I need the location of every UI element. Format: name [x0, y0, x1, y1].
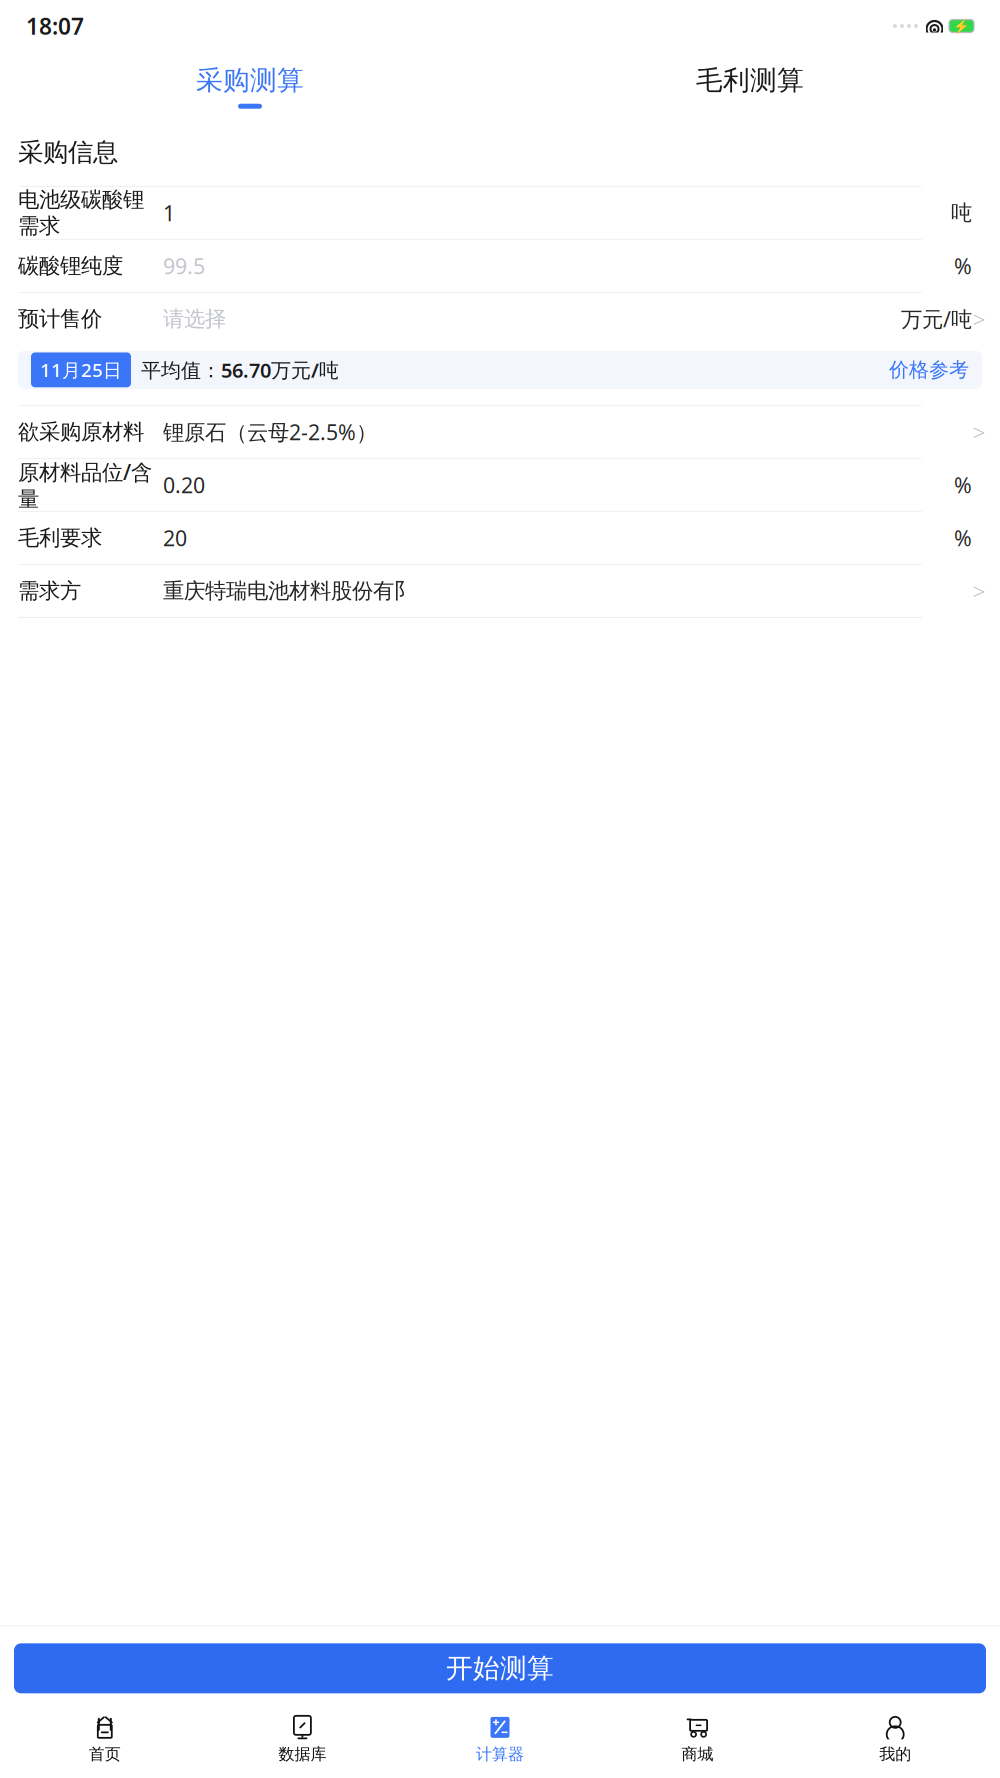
staticText: ⚡ [953, 18, 970, 34]
staticText: 我的 [879, 1744, 911, 1764]
staticText: % [954, 252, 972, 280]
staticText: 数据库 [278, 1744, 326, 1764]
staticText: 毛利测算 [696, 64, 804, 97]
staticText: 毛利要求 [18, 525, 102, 551]
staticText: 11月25日 [40, 357, 122, 382]
staticText: 0.20 [163, 471, 205, 499]
staticText: 重庆特瑞电池材料股份有阝 [163, 578, 415, 604]
staticText: 需求方 [18, 578, 81, 604]
staticText: 18:07 [26, 11, 84, 41]
button[interactable]: 计算器 [401, 1709, 599, 1770]
staticText: 电池级碳酸锂需求 [18, 187, 144, 239]
staticText: > [972, 576, 985, 606]
staticText: % [954, 524, 972, 552]
staticText: 采购测算 [196, 64, 304, 97]
staticText: 吨 [951, 200, 972, 226]
staticText: 商城 [682, 1744, 714, 1764]
button[interactable]: 预计售价 [0, 293, 1000, 345]
staticText: 1 [163, 199, 175, 227]
button[interactable]: 电池级碳酸锂需求 [0, 187, 1000, 239]
staticText: 平均值：56.70万元/吨 [141, 357, 339, 383]
button[interactable]: 欲采购原材料 [0, 406, 1000, 458]
staticText: 99.5 [163, 252, 205, 280]
staticText: 采购信息 [18, 137, 118, 168]
staticText: 万元/吨 [901, 305, 972, 333]
button[interactable]: 原材料品位/含量 [0, 459, 1000, 511]
staticText: % [954, 471, 972, 499]
staticText: 开始测算 [446, 1652, 554, 1685]
staticText: 预计售价 [18, 306, 102, 332]
button[interactable]: 商城 [599, 1709, 796, 1770]
staticText: > [972, 417, 985, 447]
staticText: 锂原石（云母2-2.5%） [163, 418, 377, 446]
staticText: 首页 [89, 1744, 121, 1764]
button[interactable]: 首页 [6, 1709, 204, 1770]
staticText: 碳酸锂纯度 [18, 253, 123, 279]
button[interactable]: 毛利要求 [0, 512, 1000, 564]
button[interactable]: 开始测算 [14, 1643, 986, 1693]
button[interactable]: 需求方 [0, 565, 1000, 617]
button[interactable]: 毛利测算 [500, 58, 1000, 115]
staticText: 请选择 [163, 306, 226, 332]
button[interactable]: 11月25日 [18, 351, 982, 389]
staticText: > [972, 304, 985, 334]
button[interactable]: 我的 [796, 1709, 994, 1770]
staticText: 价格参考 [889, 358, 969, 382]
button[interactable]: 碳酸锂纯度 [0, 240, 1000, 292]
button[interactable]: 数据库 [204, 1709, 401, 1770]
staticText: 欲采购原材料 [18, 419, 144, 445]
staticText: 原材料品位/含量 [18, 458, 152, 512]
staticText: 计算器 [476, 1744, 524, 1764]
staticText: 20 [163, 524, 187, 552]
button[interactable]: 采购测算 [0, 58, 500, 115]
